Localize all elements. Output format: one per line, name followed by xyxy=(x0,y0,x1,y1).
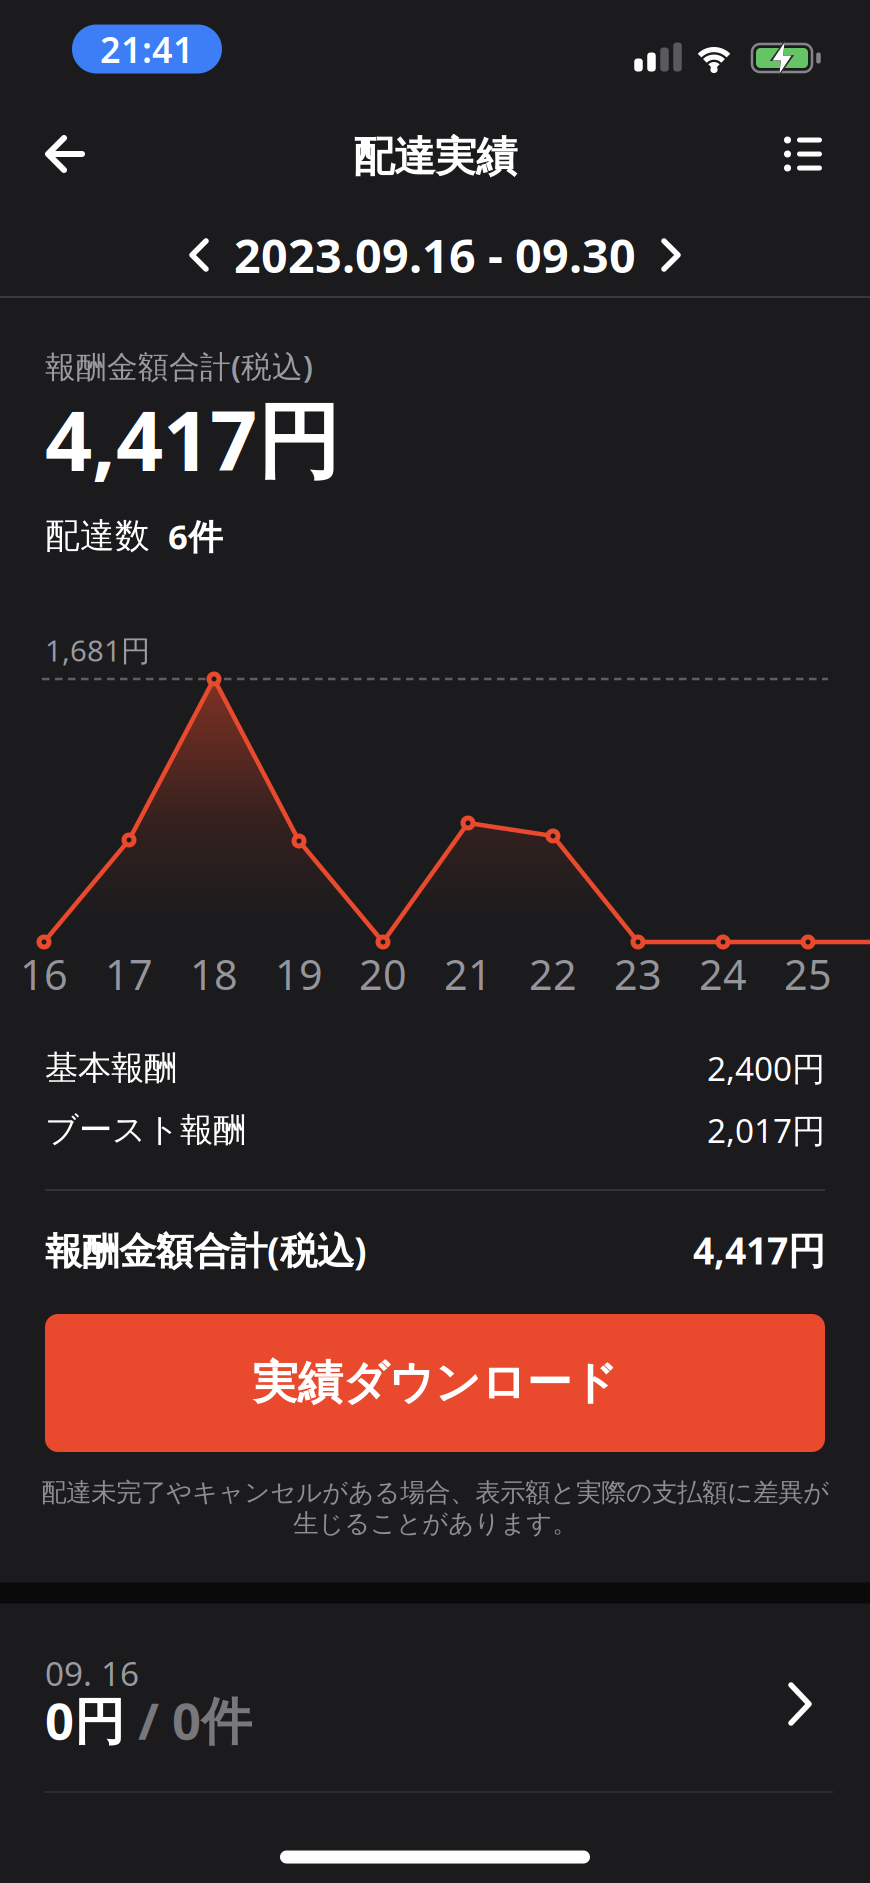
staticText: 基本報酬 xyxy=(45,1047,177,1088)
staticText: 2,017円 xyxy=(707,1108,825,1152)
staticText: 19 xyxy=(275,947,323,1001)
staticText: 配達未完了やキャンセルがある場合、表示額と実際の支払額に差異が 生じることがあり… xyxy=(41,1477,829,1539)
staticText: 0円 xyxy=(45,1686,125,1754)
staticText: 2023.09.16 - 09.30 xyxy=(234,224,636,286)
staticText: 22 xyxy=(529,947,577,1001)
staticText: 21:41 xyxy=(100,25,194,73)
staticText: 09. 16 xyxy=(45,1651,139,1695)
staticText: / 0件 xyxy=(125,1686,252,1754)
staticText: 配達実績 xyxy=(353,132,517,182)
staticText: 報酬金額合計(税込) xyxy=(45,1225,367,1275)
staticText: 21 xyxy=(444,947,492,1001)
staticText: 24 xyxy=(699,947,747,1001)
staticText: 報酬金額合計(税込) xyxy=(45,346,313,386)
staticText: 20 xyxy=(359,947,407,1001)
staticText: ブースト報酬 xyxy=(45,1109,246,1150)
button[interactable]: Next period xyxy=(648,225,694,285)
button[interactable]: Previous period xyxy=(176,225,222,285)
staticText: 2,400円 xyxy=(707,1046,825,1090)
button[interactable]: Back xyxy=(46,136,83,172)
staticText: 配達数 xyxy=(45,515,150,557)
button[interactable]: Return to call xyxy=(72,24,222,73)
staticText: 6件 xyxy=(168,513,223,559)
staticText: 23 xyxy=(614,947,662,1001)
button[interactable]: 実績ダウンロード xyxy=(45,1314,825,1452)
button[interactable]: 09. 16 xyxy=(23,1624,847,1792)
staticText: 1,681円 xyxy=(45,630,150,669)
staticText: 4,417円 xyxy=(45,384,340,494)
staticText: 17 xyxy=(105,947,153,1001)
staticText: 16 xyxy=(20,947,68,1001)
staticText: 実績ダウンロード xyxy=(252,1355,617,1411)
staticText: 4,417円 xyxy=(693,1225,825,1275)
staticText: 25 xyxy=(784,947,832,1001)
button[interactable]: History list xyxy=(784,137,822,171)
staticText: 18 xyxy=(190,947,238,1001)
